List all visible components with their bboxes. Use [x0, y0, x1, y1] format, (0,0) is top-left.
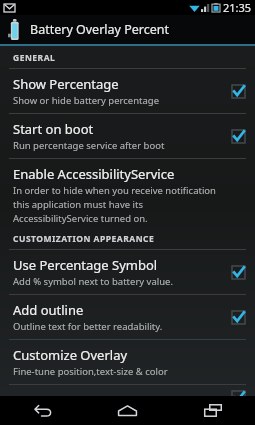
staticText: Add outline	[13, 301, 84, 319]
staticText: In order to hide when you receive notifi…	[13, 184, 216, 197]
button[interactable]: Start on boot	[0, 114, 255, 158]
button[interactable]: Use Percentage Symbol	[0, 250, 255, 294]
staticText: Fine-tune position,text-size & color	[13, 365, 168, 378]
staticText: Run percentage service after boot	[13, 139, 165, 152]
button[interactable]: Toggle setting	[229, 263, 247, 281]
button[interactable]: Toggle setting	[229, 82, 247, 100]
button[interactable]: Add outline	[0, 295, 255, 339]
button[interactable]: Battery Overlay Percent	[0, 15, 255, 44]
staticText: Add % symbol next to battery value.	[13, 275, 173, 288]
button[interactable]: Toggle setting	[229, 127, 247, 145]
staticText: Enable AccessibilityService	[13, 165, 175, 183]
staticText: Customize Overlay	[13, 346, 128, 364]
staticText: Use Percentage Symbol	[13, 256, 158, 274]
button[interactable]: Recent apps	[170, 396, 255, 425]
button[interactable]: Back	[0, 396, 85, 425]
button[interactable]: Toggle setting	[229, 308, 247, 326]
button[interactable]: Enable AccessibilityService	[0, 159, 255, 227]
staticText: Show Percentage	[13, 75, 119, 93]
staticText: 21:35	[223, 0, 252, 15]
staticText: Show or hide battery percentage	[13, 94, 160, 107]
staticText: this application must have its	[13, 198, 144, 211]
staticText: CUSTOMIZATION APPEARANCE	[13, 233, 155, 245]
button[interactable]: Keep while charging.	[0, 385, 255, 396]
button[interactable]: Customize Overlay	[0, 340, 255, 384]
staticText: Battery Overlay Percent	[30, 21, 170, 38]
button[interactable]: Home	[85, 396, 170, 425]
staticText: GENERAL	[13, 52, 56, 64]
button[interactable]: Show Percentage	[0, 69, 255, 113]
staticText: AccessibilityService turned on.	[13, 212, 148, 225]
staticText: Outline text for better readability.	[13, 320, 163, 333]
staticText: Start on boot	[13, 120, 94, 138]
